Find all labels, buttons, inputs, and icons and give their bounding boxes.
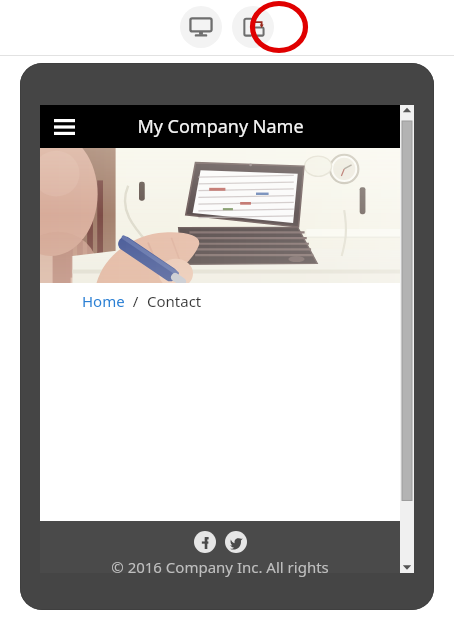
button[interactable]: Mobile view: [232, 6, 274, 48]
button[interactable]: Facebook: [194, 531, 216, 553]
staticText: /: [125, 291, 147, 311]
staticText: © 2016 Company Inc. All rights: [111, 557, 329, 577]
staticText: Contact: [147, 291, 202, 311]
button[interactable]: Twitter: [225, 531, 247, 553]
button[interactable]: Desktop view: [180, 6, 222, 48]
button[interactable]: Open menu: [49, 112, 79, 142]
staticText: My Company Name: [137, 114, 304, 139]
button[interactable]: Home: [82, 291, 125, 311]
staticText: Home: [82, 291, 125, 311]
